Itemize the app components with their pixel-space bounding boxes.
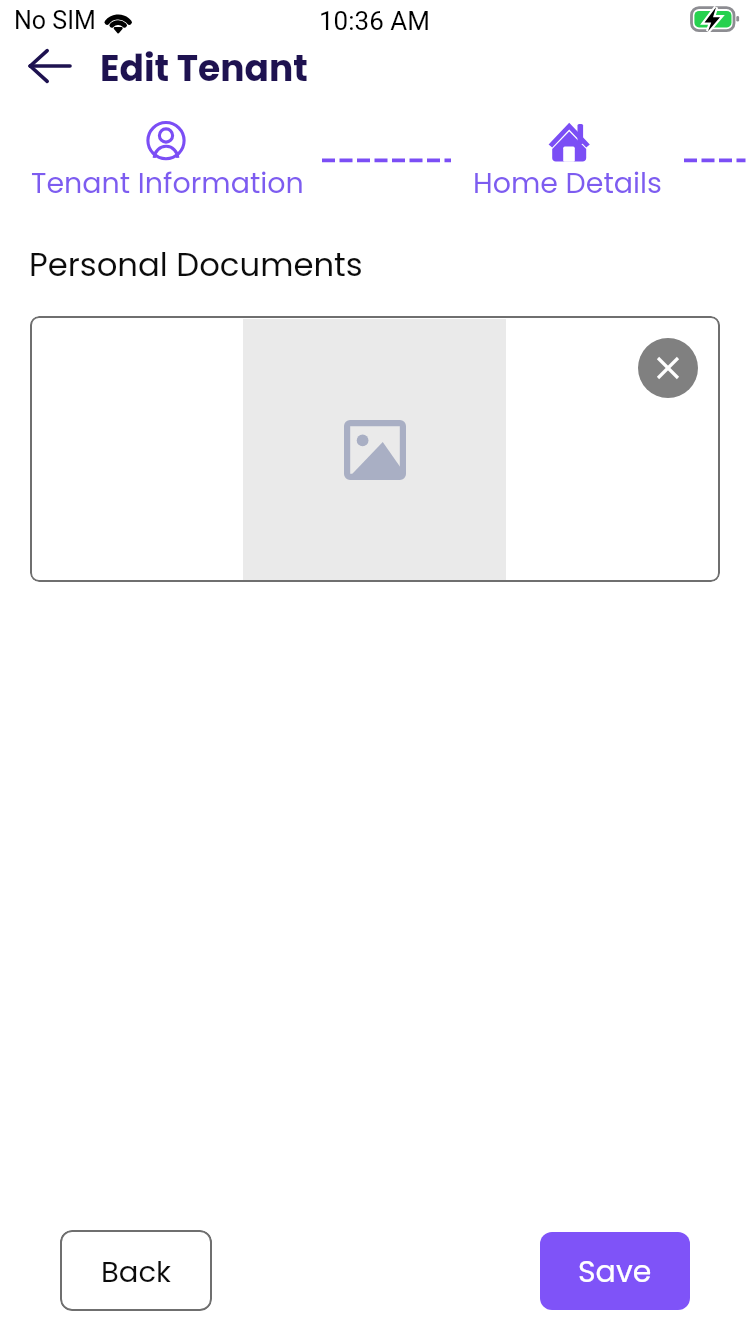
button[interactable]: Save [540,1232,690,1310]
button[interactable]: Home Details [464,114,672,200]
staticText: Back [101,1252,171,1293]
button[interactable]: Remove document [30,316,720,582]
button[interactable]: Remove document [638,338,698,398]
button[interactable]: Back [16,40,84,92]
button[interactable]: Tenant Information [20,114,312,200]
button[interactable]: Back [60,1230,212,1311]
staticText: Home Details [473,163,662,203]
staticText: Save [578,1251,652,1293]
staticText: Tenant Information [31,163,304,203]
staticText: 10:36 AM [319,6,430,36]
staticText: No SIM [14,6,96,35]
staticText: Personal Documents [29,242,363,287]
staticText: Edit Tenant [100,43,308,93]
